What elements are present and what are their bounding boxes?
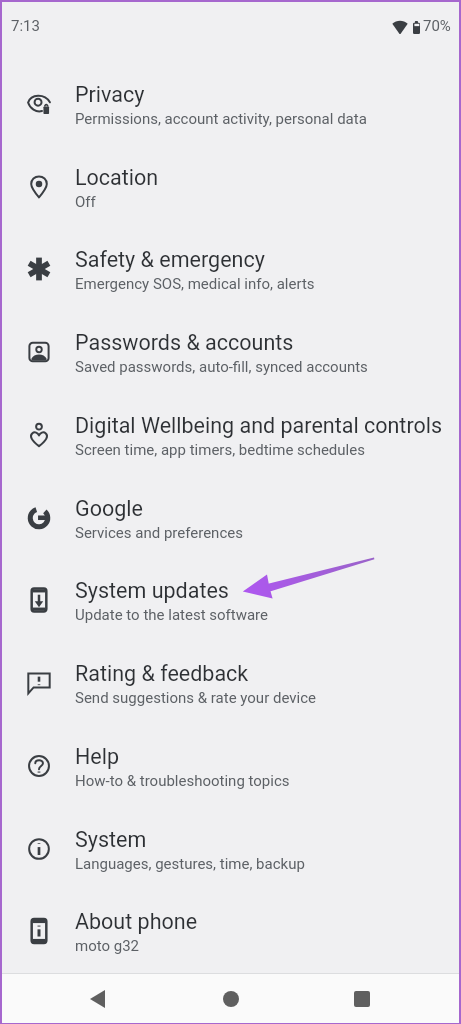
button[interactable]: Digital Wellbeing and parental controls <box>2 413 459 496</box>
other: Battery 70 percent <box>413 21 420 34</box>
staticText: System updates <box>75 578 229 603</box>
staticText: Location <box>75 165 159 190</box>
staticText: Off <box>75 193 96 211</box>
staticText: Passwords & accounts <box>75 330 294 355</box>
button[interactable]: Google <box>2 496 459 579</box>
staticText: Languages, gestures, time, backup <box>75 855 305 873</box>
staticText: Digital Wellbeing and parental controls <box>75 413 443 438</box>
staticText: Send suggestions & rate your device <box>75 689 316 707</box>
staticText: Update to the latest software <box>75 606 269 624</box>
staticText: Emergency SOS, medical info, alerts <box>75 275 315 293</box>
staticText: 7:13 <box>11 17 40 35</box>
staticText: Help <box>75 744 120 769</box>
button[interactable]: Help <box>2 744 459 827</box>
staticText: 70% <box>423 17 451 35</box>
button[interactable]: Safety & emergency <box>2 247 459 330</box>
other: Wi-Fi connected <box>392 21 408 34</box>
staticText: Services and preferences <box>75 524 243 542</box>
button[interactable]: System updates <box>2 578 459 661</box>
button[interactable]: Passwords & accounts <box>2 330 459 413</box>
button[interactable]: Home <box>196 974 266 1023</box>
staticText: About phone <box>75 909 198 934</box>
staticText: Google <box>75 496 143 521</box>
button[interactable]: System <box>2 827 459 910</box>
staticText: Screen time, app timers, bedtime schedul… <box>75 441 365 459</box>
staticText: Saved passwords, auto-fill, synced accou… <box>75 358 368 376</box>
staticText: Privacy <box>75 82 145 107</box>
button[interactable]: Location <box>2 165 459 248</box>
button[interactable]: About phone <box>2 909 459 992</box>
button[interactable]: Privacy <box>2 82 459 165</box>
button[interactable]: Rating & feedback <box>2 661 459 744</box>
button[interactable]: Back <box>62 974 132 1023</box>
button[interactable]: Recent apps <box>327 974 397 1023</box>
staticText: System <box>75 827 147 852</box>
staticText: Rating & feedback <box>75 661 249 686</box>
staticText: moto g32 <box>75 937 140 955</box>
staticText: How-to & troubleshooting topics <box>75 772 290 790</box>
staticText: Permissions, account activity, personal … <box>75 110 367 128</box>
staticText: Safety & emergency <box>75 247 265 272</box>
